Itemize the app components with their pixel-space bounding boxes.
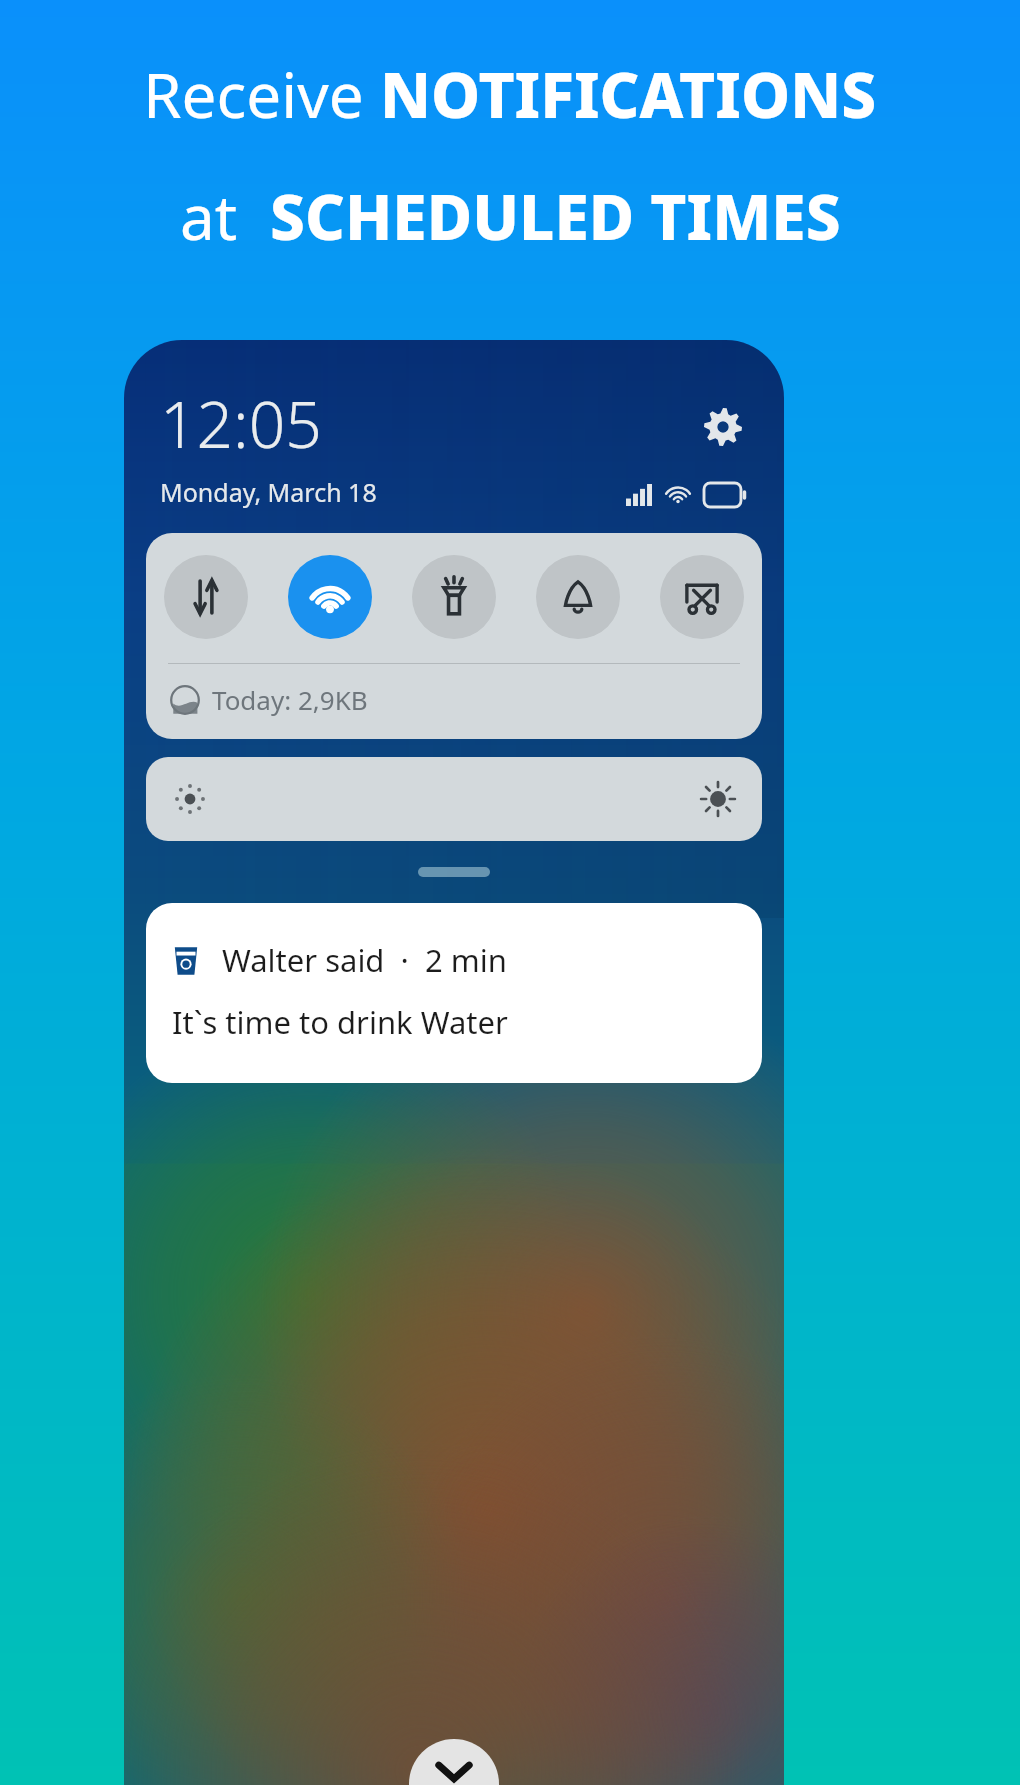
staticText: Today: 2,9KB bbox=[212, 682, 368, 717]
button[interactable]: Brightness bbox=[146, 757, 762, 841]
staticText: 12:05 bbox=[160, 380, 322, 467]
staticText: It`s time to drink Water bbox=[172, 1001, 508, 1043]
button[interactable]: Close bbox=[409, 1739, 499, 1785]
staticText: SCHEDULED TIMES bbox=[270, 174, 841, 258]
button[interactable]: Do not disturb bbox=[536, 555, 620, 639]
button[interactable]: Flashlight bbox=[412, 555, 496, 639]
staticText: NOTIFICATIONS bbox=[380, 52, 877, 136]
button[interactable]: Screenshot bbox=[660, 555, 744, 639]
staticText: at bbox=[180, 174, 270, 258]
button[interactable]: Walter said · 2 min bbox=[146, 903, 762, 1083]
staticText: Receive bbox=[143, 52, 380, 136]
button[interactable]: Settings bbox=[698, 402, 748, 452]
staticText: Monday, March 18 bbox=[160, 475, 377, 509]
staticText: Walter said · 2 min bbox=[222, 939, 507, 981]
button[interactable]: Mobile data bbox=[164, 555, 248, 639]
button[interactable]: Wi-Fi bbox=[288, 555, 372, 639]
